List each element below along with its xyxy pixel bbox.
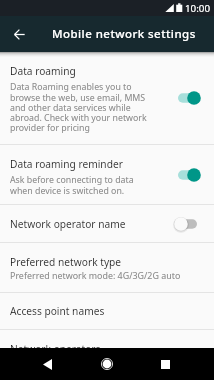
button[interactable]: Network operator name [0,205,214,242]
staticText: Data Roaming enables you to browse the w… [10,81,156,134]
button[interactable]: Home [88,348,125,380]
staticText: Mobile network settings [52,26,196,42]
button[interactable]: Back [0,16,38,52]
button[interactable]: Network operators [0,330,214,348]
staticText: Data roaming reminder [10,157,123,171]
staticText: Access point names [10,304,105,318]
staticText: Network operators [10,342,101,348]
button[interactable]: Toggle [171,214,205,234]
button[interactable]: Toggle [171,88,205,108]
button[interactable]: Data roaming [0,52,214,144]
staticText: Data roaming [10,64,76,78]
button[interactable]: Toggle [171,165,205,185]
button[interactable]: Back [29,348,66,380]
staticText: Preferred network mode: 4G/3G/2G auto [10,269,181,281]
staticText: Ask before connecting to data when devic… [10,174,156,197]
staticText: 10:00 [185,2,211,15]
staticText: Preferred network type [10,255,122,269]
button[interactable]: Access point names [0,293,214,329]
button[interactable]: Recents [147,348,184,380]
button[interactable]: Data roaming reminder [0,145,214,204]
staticText: Network operator name [10,217,126,231]
button[interactable]: Preferred network type [0,243,214,292]
